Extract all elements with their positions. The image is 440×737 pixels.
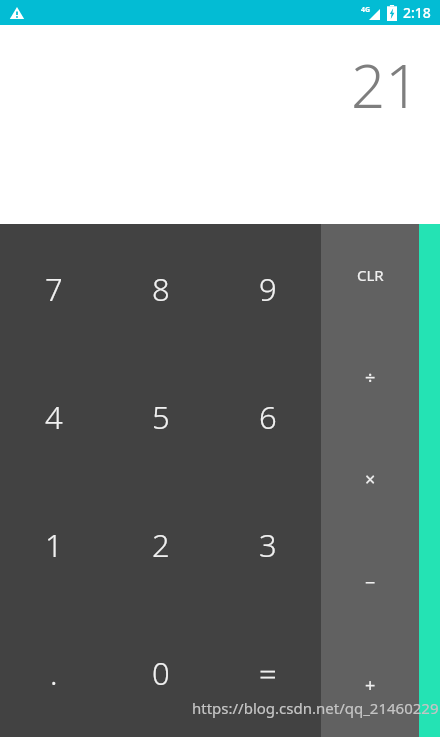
button[interactable]: 6 xyxy=(214,353,321,481)
button[interactable]: 7 xyxy=(0,224,107,353)
staticText: 4 xyxy=(45,396,63,438)
button[interactable]: Clear xyxy=(321,224,419,326)
button[interactable]: Plus xyxy=(321,634,419,737)
button[interactable]: 3 xyxy=(214,481,321,609)
staticText: 9 xyxy=(259,268,277,310)
button[interactable]: 1 xyxy=(0,481,107,609)
staticText: 7 xyxy=(45,268,63,310)
button[interactable]: Minus xyxy=(321,531,419,634)
staticText: 6 xyxy=(259,396,277,438)
staticText: − xyxy=(365,570,376,595)
staticText: 3 xyxy=(259,524,277,566)
staticText: CLR xyxy=(357,265,384,285)
button[interactable]: 2 xyxy=(107,481,214,609)
staticText: ÷ xyxy=(365,365,376,390)
button[interactable]: 4 xyxy=(0,353,107,481)
button[interactable]: . xyxy=(0,609,107,737)
staticText: 2:18 xyxy=(403,3,431,22)
staticText: . xyxy=(50,652,58,694)
staticText: × xyxy=(365,467,376,492)
staticText: 4G xyxy=(361,5,371,15)
staticText: 0 xyxy=(152,652,170,694)
button[interactable]: 5 xyxy=(107,353,214,481)
staticText: 21 xyxy=(351,44,420,126)
staticText: https://blog.csdn.net/qq_21460229 xyxy=(192,698,439,718)
button[interactable]: Divide xyxy=(321,326,419,428)
staticText: = xyxy=(259,652,277,694)
staticText: 2 xyxy=(152,524,170,566)
button[interactable]: 9 xyxy=(214,224,321,353)
staticText: 5 xyxy=(152,396,170,438)
staticText: 8 xyxy=(152,268,170,310)
button[interactable]: Multiply xyxy=(321,428,419,531)
button[interactable]: 0 xyxy=(107,609,214,737)
staticText: + xyxy=(365,673,376,698)
other: Warning xyxy=(9,5,25,21)
staticText: 1 xyxy=(45,524,63,566)
button[interactable]: 8 xyxy=(107,224,214,353)
button[interactable]: = xyxy=(214,609,321,737)
